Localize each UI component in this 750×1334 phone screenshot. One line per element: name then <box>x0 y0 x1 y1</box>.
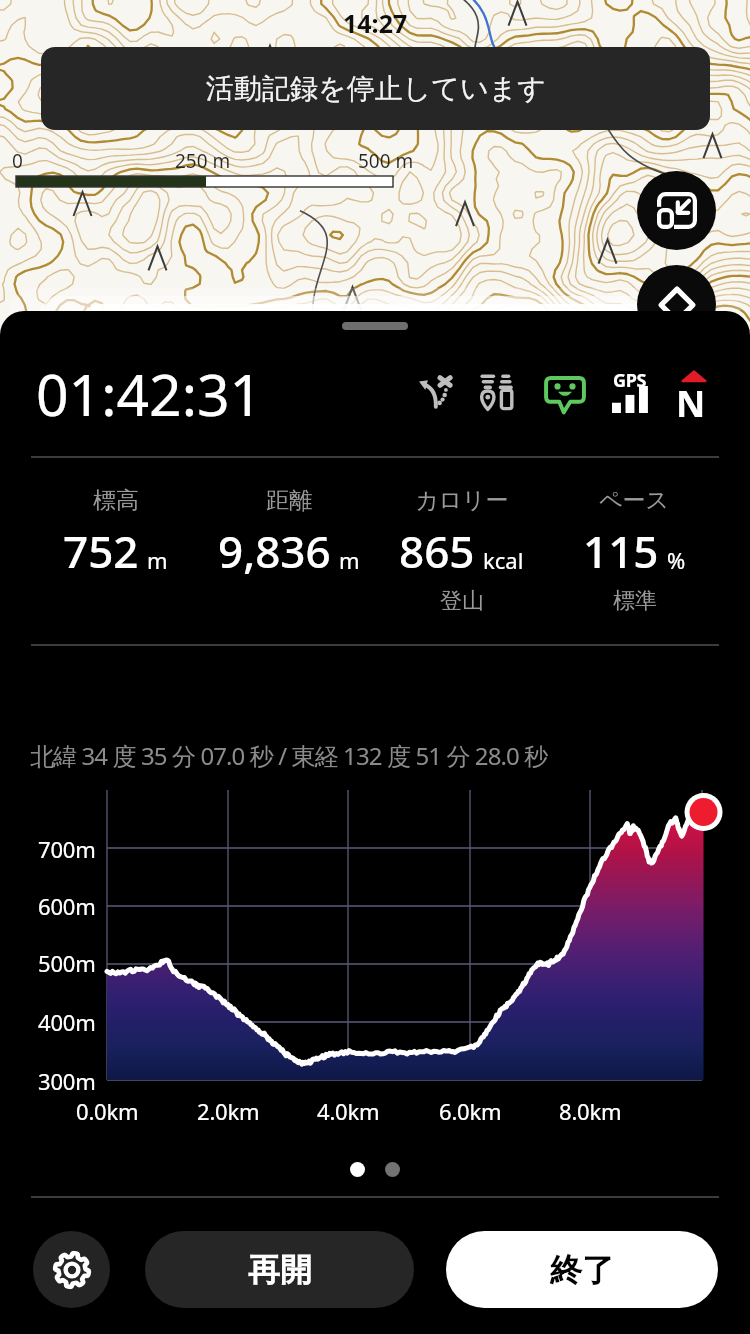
staticText: 再開 <box>248 1250 312 1290</box>
staticText: 北緯 34 度 35 分 07.0 秒 / 東経 132 度 51 分 28.0… <box>30 739 548 772</box>
staticText: % <box>667 545 686 575</box>
staticText: 500 m <box>358 148 414 174</box>
staticText: 600m <box>38 891 96 921</box>
staticText: 0.0km <box>76 1096 139 1126</box>
staticText: 700m <box>38 834 96 864</box>
staticText: 865 <box>399 521 475 581</box>
staticText: 400m <box>38 1007 96 1037</box>
staticText: ペース <box>599 486 670 515</box>
staticText: 距離 <box>266 486 312 515</box>
staticText: 500m <box>38 948 96 978</box>
staticText: カロリー <box>415 486 509 515</box>
staticText: 9,836 <box>218 521 331 581</box>
button[interactable]: 終了 <box>446 1231 718 1308</box>
staticText: m <box>147 545 168 575</box>
staticText: GPS <box>613 368 646 393</box>
staticText: 01:42:31 <box>36 355 263 433</box>
staticText: 752 <box>63 521 139 581</box>
staticText: m <box>339 545 360 575</box>
staticText: 0 <box>12 148 23 174</box>
staticText: N <box>676 379 706 428</box>
staticText: 300m <box>38 1066 96 1096</box>
staticText: 登山 <box>440 587 484 615</box>
staticText: 8.0km <box>559 1096 622 1126</box>
staticText: 標高 <box>93 486 139 515</box>
staticText: 115 <box>583 521 659 581</box>
staticText: 活動記録を停止しています <box>206 71 546 106</box>
button[interactable]: Resize map <box>637 171 716 250</box>
staticText: 14:27 <box>343 6 408 40</box>
staticText: 終了 <box>550 1250 614 1290</box>
button[interactable]: 再開 <box>145 1231 414 1308</box>
button[interactable]: Map layers <box>637 265 716 344</box>
staticText: 標準 <box>613 587 657 615</box>
button[interactable]: Settings <box>33 1231 110 1308</box>
staticText: kcal <box>483 545 524 575</box>
staticText: 6.0km <box>439 1096 502 1126</box>
staticText: 2.0km <box>197 1096 260 1126</box>
staticText: 4.0km <box>317 1096 380 1126</box>
staticText: 250 m <box>175 148 231 174</box>
